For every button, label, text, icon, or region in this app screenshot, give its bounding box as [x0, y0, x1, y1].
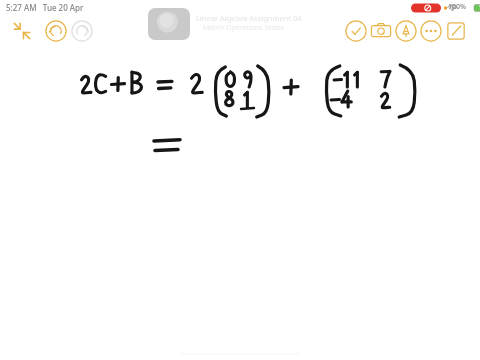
staticText: 5:27 AM Tue 20 Apr: [6, 2, 84, 13]
button[interactable]: Done: [344, 19, 368, 43]
button[interactable]: New note: [444, 19, 468, 43]
button[interactable]: More options: [419, 19, 443, 43]
staticText: Linear Algebra Assignment 04: [196, 13, 302, 23]
staticText: Matrix Operations Notes: [203, 23, 284, 33]
button[interactable]: Annotate: [394, 19, 418, 43]
button[interactable]: Undo: [44, 19, 68, 43]
button[interactable]: Collapse: [10, 19, 34, 43]
button[interactable]: Document thumbnail: [148, 8, 190, 40]
button[interactable]: Camera: [369, 19, 393, 43]
button[interactable]: Redo: [70, 19, 94, 43]
staticText: 100%: [448, 2, 466, 12]
